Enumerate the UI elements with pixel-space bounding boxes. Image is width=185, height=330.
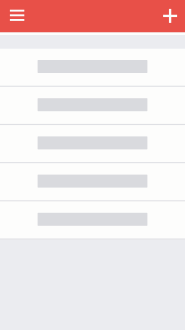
button[interactable]: Item 4 — [0, 163, 185, 201]
button[interactable]: Menu — [0, 0, 34, 32]
button[interactable]: Item 5 — [0, 201, 185, 240]
button[interactable]: Add — [153, 0, 185, 32]
button[interactable]: Item 3 — [0, 125, 185, 163]
button[interactable]: Item 2 — [0, 87, 185, 125]
button[interactable]: Item 1 — [0, 49, 185, 87]
